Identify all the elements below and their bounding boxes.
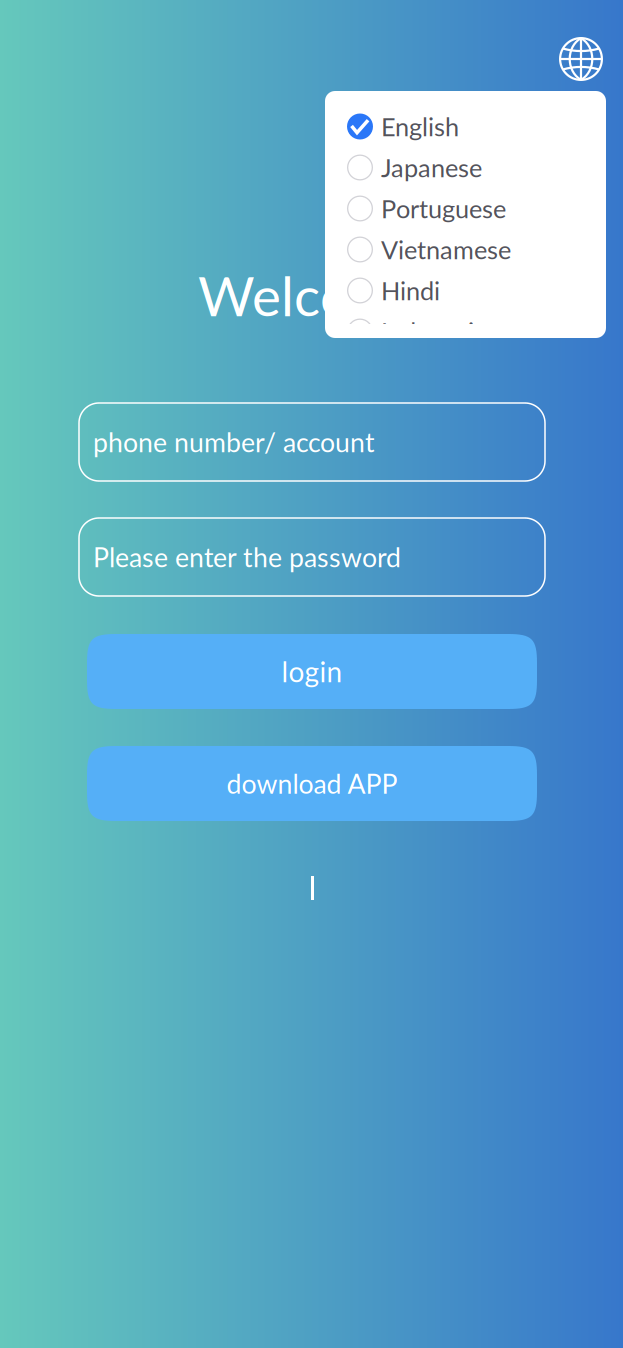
button[interactable]: English [347,106,606,147]
staticText: Hindi [381,275,440,306]
staticText: Please enter the password [93,541,401,573]
staticText: download APP [226,767,397,799]
staticText: phone number/ account [93,426,375,458]
staticText: Welcome [198,262,425,328]
staticText: Portuguese [381,193,506,224]
button[interactable]: download APP [87,746,537,821]
staticText: Indonesian [381,316,501,347]
button[interactable]: Language [559,37,603,81]
staticText: Japanese [381,152,482,183]
button[interactable]: Japanese [347,147,606,188]
button[interactable]: Vietnamese [347,229,606,270]
button[interactable]: phone number/ account [79,403,545,481]
staticText: Vietnamese [381,234,511,265]
button[interactable]: Hindi [347,270,606,311]
button[interactable]: Indonesian [347,311,606,352]
staticText: English [381,111,459,142]
button[interactable]: Portuguese [347,188,606,229]
button[interactable]: Please enter the password [79,518,545,596]
staticText: login [281,655,342,688]
button[interactable]: login [87,634,537,709]
